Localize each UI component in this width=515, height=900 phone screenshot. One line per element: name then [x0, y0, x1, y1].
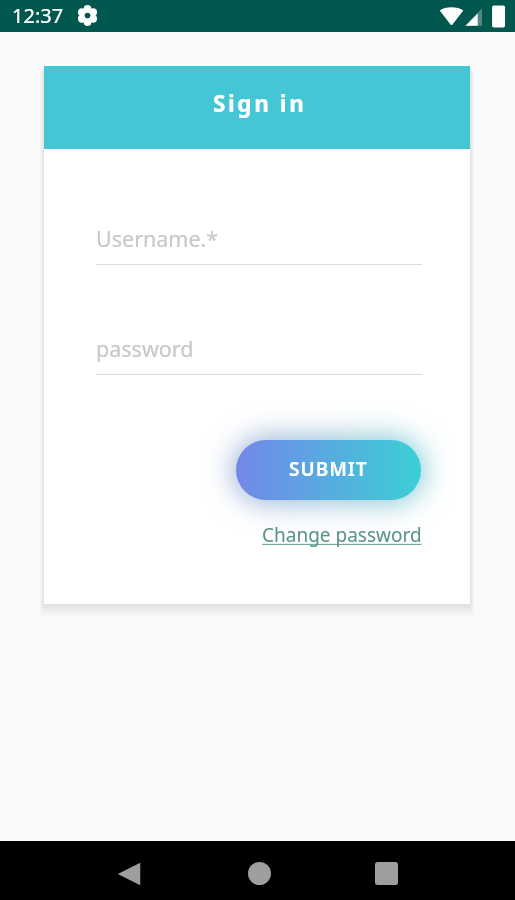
staticText: Sign in	[213, 88, 307, 119]
staticText: Username.*	[96, 224, 219, 253]
button[interactable]: Change password	[240, 522, 422, 548]
button[interactable]: Home	[236, 847, 282, 900]
staticText: Change password	[262, 522, 422, 548]
staticText: 12:37	[12, 2, 64, 29]
button[interactable]: Username.*	[96, 224, 422, 265]
staticText: password	[96, 334, 194, 363]
button[interactable]: SUBMIT	[236, 440, 421, 500]
button[interactable]: Back	[106, 847, 152, 900]
button[interactable]: Recent apps	[363, 847, 409, 900]
staticText: SUBMIT	[289, 456, 368, 482]
button[interactable]: password	[96, 334, 422, 375]
